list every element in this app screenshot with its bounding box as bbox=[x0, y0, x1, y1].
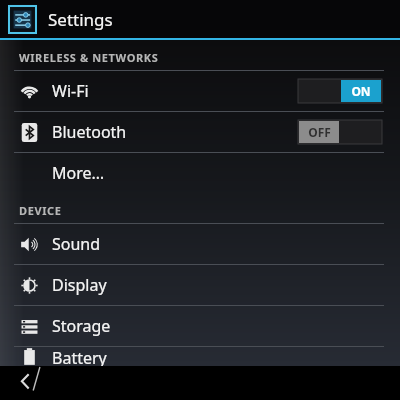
button[interactable]: Battery bbox=[0, 347, 400, 366]
staticText: More… bbox=[52, 162, 105, 184]
staticText: Wi-Fi bbox=[52, 80, 89, 102]
staticText: Storage bbox=[52, 315, 111, 337]
staticText: ON bbox=[351, 83, 371, 99]
staticText: Display bbox=[52, 274, 107, 296]
staticText: Sound bbox=[52, 233, 101, 255]
other: Storage bbox=[20, 317, 39, 336]
button[interactable]: Display bbox=[0, 265, 400, 305]
staticText: Battery bbox=[52, 347, 107, 366]
button[interactable]: Back bbox=[8, 366, 42, 400]
other: Battery bbox=[20, 347, 39, 366]
button[interactable]: Switch off bbox=[298, 120, 382, 144]
other: Sound bbox=[20, 235, 39, 254]
staticText: Bluetooth bbox=[52, 121, 127, 143]
button[interactable]: Sound bbox=[0, 224, 400, 264]
button[interactable]: Bluetooth bbox=[0, 112, 400, 152]
other: Wi-Fi bbox=[20, 82, 39, 101]
other: Display bbox=[20, 276, 39, 295]
staticText: Settings bbox=[48, 8, 113, 31]
button[interactable]: More… bbox=[0, 153, 400, 193]
staticText: OFF bbox=[308, 124, 331, 140]
button[interactable]: Switch on bbox=[298, 79, 382, 103]
button[interactable]: Settings bbox=[0, 0, 400, 38]
button[interactable]: Storage bbox=[0, 306, 400, 346]
staticText: WIRELESS & NETWORKS bbox=[19, 50, 159, 65]
button[interactable]: Wi-Fi bbox=[0, 71, 400, 111]
other: Bluetooth bbox=[20, 123, 39, 142]
staticText: DEVICE bbox=[19, 203, 62, 218]
